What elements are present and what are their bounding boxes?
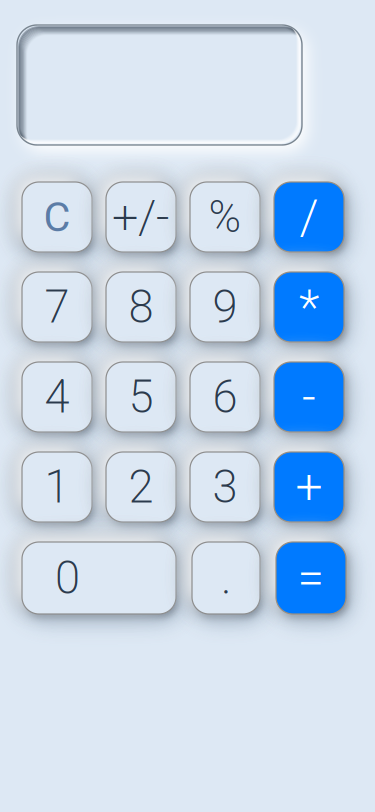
staticText: 8 [128, 280, 153, 333]
button[interactable]: - [274, 362, 344, 432]
staticText: = [297, 550, 324, 606]
staticText: 5 [128, 370, 153, 423]
staticText: - [302, 369, 316, 425]
staticText: 7 [44, 280, 69, 333]
staticText: * [299, 279, 319, 335]
button[interactable]: 5 [106, 362, 176, 432]
button[interactable]: 2 [106, 452, 176, 522]
staticText: 3 [212, 460, 237, 513]
staticText: C [43, 193, 70, 241]
staticText: 0 [55, 551, 80, 604]
staticText: 2 [128, 460, 153, 513]
staticText: / [299, 189, 318, 245]
staticText: + [295, 459, 322, 515]
button[interactable]: +/- [106, 182, 176, 252]
staticText: 1 [44, 460, 69, 513]
button[interactable]: 8 [106, 272, 176, 342]
button[interactable]: C [22, 182, 92, 252]
button[interactable]: 0 [22, 542, 176, 614]
button[interactable]: 1 [22, 452, 92, 522]
button[interactable]: 3 [190, 452, 260, 522]
staticText: 4 [44, 370, 69, 423]
button[interactable]: * [274, 272, 344, 342]
button[interactable]: 6 [190, 362, 260, 432]
button[interactable]: 9 [190, 272, 260, 342]
staticText: +/- [112, 190, 170, 244]
button[interactable]: 4 [22, 362, 92, 432]
staticText: . [221, 551, 231, 604]
button[interactable]: % [190, 182, 260, 252]
button[interactable]: = [276, 542, 346, 614]
staticText: 6 [212, 370, 237, 423]
staticText: 9 [212, 280, 237, 333]
button[interactable]: 7 [22, 272, 92, 342]
staticText: % [208, 191, 241, 243]
button[interactable]: . [192, 542, 260, 614]
button[interactable]: + [274, 452, 344, 522]
button[interactable]: / [274, 182, 344, 252]
